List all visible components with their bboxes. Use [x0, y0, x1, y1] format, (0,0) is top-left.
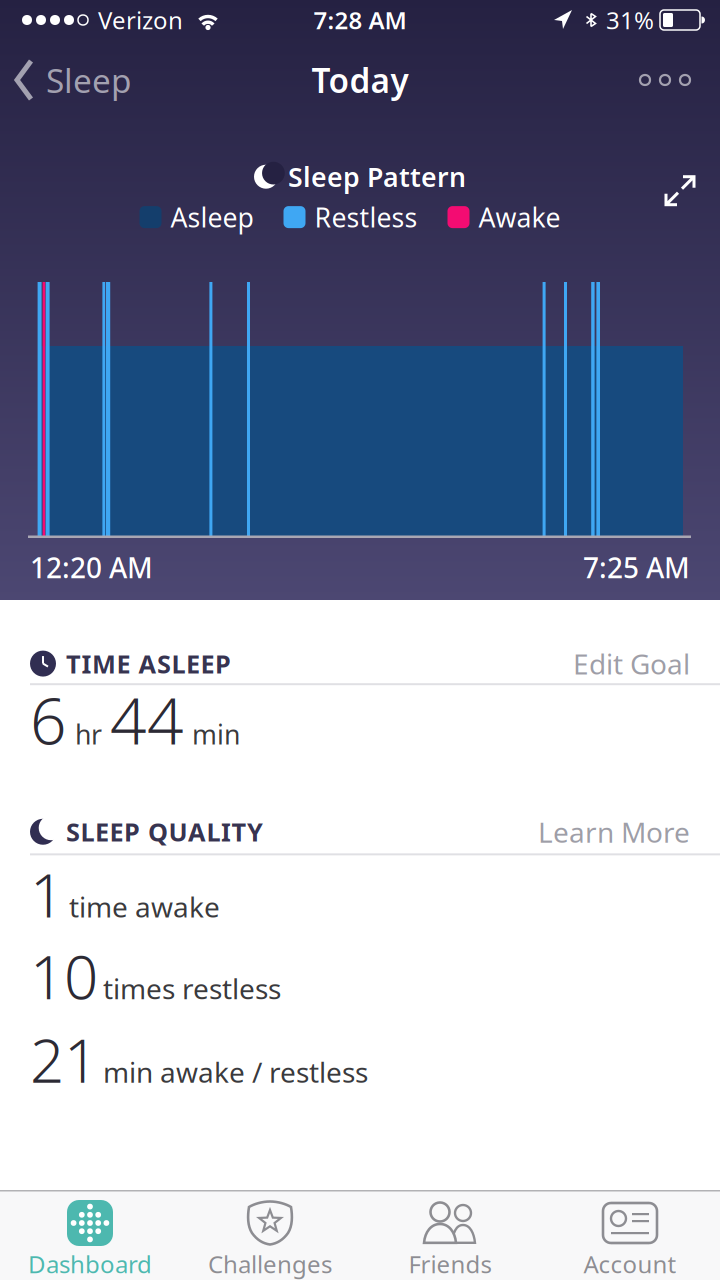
staticText: time awake: [69, 888, 220, 925]
button[interactable]: Friends: [360, 1190, 540, 1280]
staticText: hr: [75, 716, 102, 752]
staticText: Edit Goal: [573, 645, 690, 682]
staticText: 44: [110, 677, 184, 762]
staticText: Restless: [314, 199, 417, 235]
staticText: 31%: [606, 4, 654, 36]
staticText: Account: [583, 1248, 676, 1280]
staticText: SLEEP QUALITY: [66, 815, 263, 848]
staticText: Sleep Pattern: [288, 159, 466, 194]
staticText: min: [192, 716, 240, 752]
staticText: times restless: [103, 970, 281, 1007]
button[interactable]: Account: [540, 1190, 720, 1280]
staticText: Learn More: [538, 813, 690, 850]
staticText: 10: [30, 936, 98, 1016]
staticText: min awake / restless: [103, 1053, 368, 1091]
staticText: 7:25 AM: [583, 549, 690, 586]
button[interactable]: Edit Goal: [573, 645, 690, 682]
staticText: 1: [30, 854, 64, 934]
staticText: Awake: [478, 199, 560, 235]
staticText: 12:20 AM: [30, 549, 153, 586]
button[interactable]: Learn More: [538, 813, 690, 850]
staticText: Sleep: [46, 58, 132, 102]
staticText: Friends: [408, 1248, 491, 1280]
button[interactable]: Dashboard: [0, 1190, 180, 1280]
button[interactable]: Sleep: [0, 58, 132, 102]
button[interactable]: [640, 75, 720, 85]
staticText: Challenges: [208, 1248, 332, 1280]
staticText: TIME ASLEEP: [66, 647, 231, 680]
staticText: 21: [30, 1020, 98, 1099]
staticText: Asleep: [170, 199, 253, 235]
staticText: 6: [30, 677, 67, 762]
staticText: Dashboard: [28, 1248, 152, 1280]
button[interactable]: Challenges: [180, 1190, 360, 1280]
staticText: 7:28 AM: [313, 4, 406, 36]
staticText: Today: [311, 58, 408, 102]
button[interactable]: [664, 175, 720, 207]
staticText: Verizon: [98, 4, 183, 36]
